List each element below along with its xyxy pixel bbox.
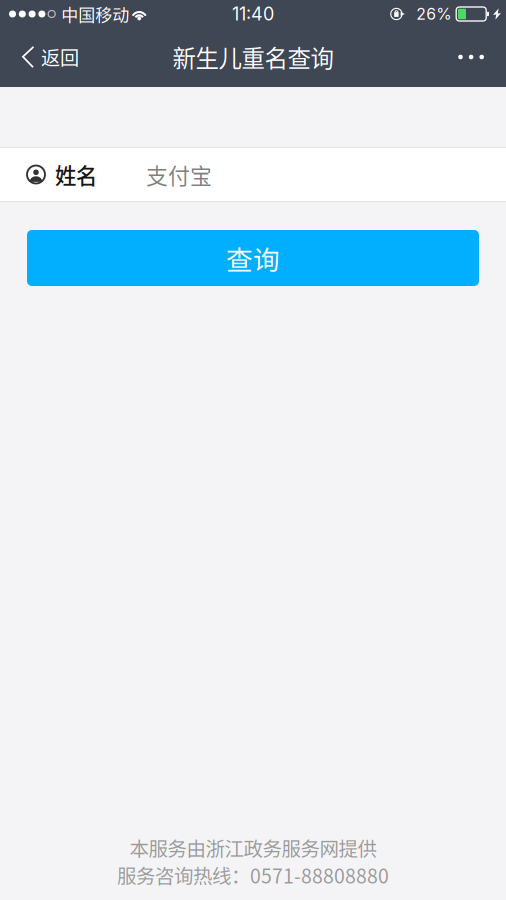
button[interactable]: 返回 — [0, 40, 95, 74]
staticText: 本服务由浙江政务服务网提供 — [129, 834, 376, 862]
button[interactable]: More — [438, 40, 506, 74]
staticText: 服务咨询热线：0571-88808880 — [117, 861, 389, 889]
staticText: 中国移动 — [61, 2, 129, 26]
staticText: 姓名 — [55, 159, 97, 190]
staticText: 支付宝 — [146, 159, 212, 190]
staticText: 11:40 — [232, 3, 274, 25]
staticText: 查询 — [226, 239, 280, 277]
staticText: 26% — [416, 4, 451, 23]
staticText: 返回 — [41, 43, 79, 71]
staticText: 新生儿重名查询 — [172, 40, 333, 74]
button[interactable]: 查询 — [27, 230, 479, 286]
